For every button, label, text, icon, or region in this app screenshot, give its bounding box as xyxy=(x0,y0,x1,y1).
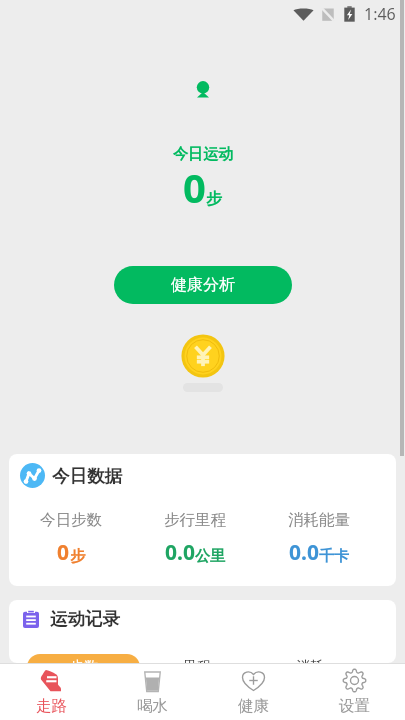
staticText: 消耗 xyxy=(296,658,324,663)
staticText: 消耗能量 xyxy=(288,510,350,530)
staticText: 0 xyxy=(57,538,70,567)
staticText: 健康分析 xyxy=(171,275,235,295)
staticText: 步数 xyxy=(70,658,98,663)
button[interactable]: 步数 xyxy=(27,654,140,663)
other: 喝水 xyxy=(140,668,165,693)
staticText: 0.0 xyxy=(165,538,195,567)
other: 健康 xyxy=(241,668,266,693)
staticText: 步 xyxy=(70,547,85,566)
staticText: 公里 xyxy=(195,547,225,566)
button[interactable]: 消耗 xyxy=(253,654,366,663)
button[interactable]: 设置 xyxy=(304,668,405,716)
staticText: 运动记录 xyxy=(50,608,120,630)
staticText: 设置 xyxy=(339,696,370,716)
button[interactable]: 里程 xyxy=(140,654,253,663)
button[interactable]: 喝水 xyxy=(102,668,203,716)
staticText: 健康 xyxy=(238,696,269,716)
staticText: 喝水 xyxy=(137,696,168,716)
staticText: 千卡 xyxy=(319,547,349,566)
button[interactable]: 健康 xyxy=(203,668,304,716)
staticText: 0.0 xyxy=(289,538,319,567)
staticText: 0 xyxy=(183,160,206,214)
staticText: 今日运动 xyxy=(173,145,233,164)
button[interactable]: 金币 xyxy=(181,334,225,392)
staticText: 今日步数 xyxy=(40,510,102,530)
staticText: 走路 xyxy=(36,696,67,716)
staticText: 步 xyxy=(206,189,222,209)
other: 走路 xyxy=(39,668,64,693)
button[interactable]: 走路 xyxy=(0,668,102,716)
staticText: 里程 xyxy=(183,658,211,663)
staticText: 今日数据 xyxy=(52,465,122,487)
staticText: 步行里程 xyxy=(164,510,226,530)
other: 设置 xyxy=(342,668,367,693)
button[interactable]: 健康分析 xyxy=(114,266,292,304)
staticText: 1:46 xyxy=(364,3,396,25)
